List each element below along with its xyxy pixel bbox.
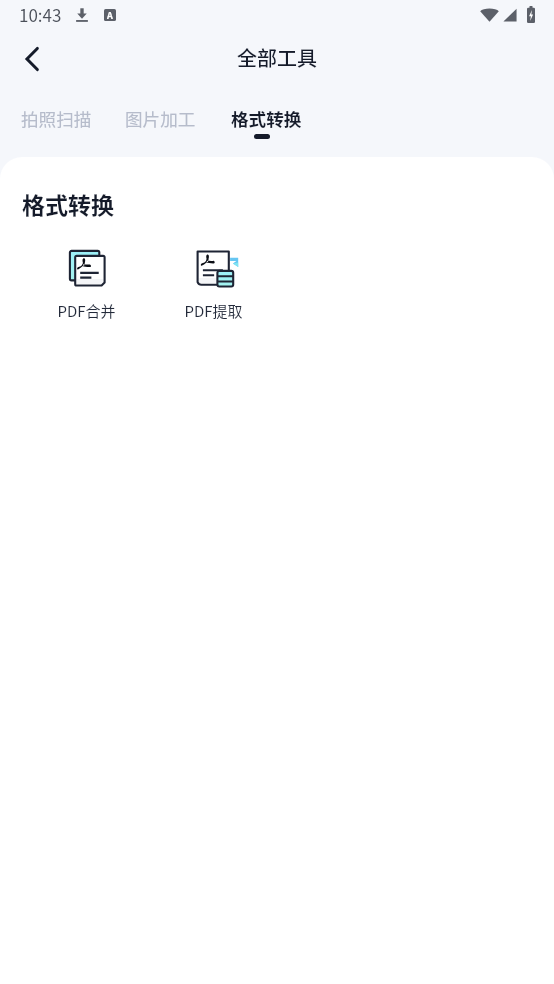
staticText: 格式转换 <box>231 106 302 131</box>
button[interactable]: PDF提取 <box>150 242 277 322</box>
button[interactable]: 格式转换 <box>231 106 302 139</box>
button[interactable]: 拍照扫描 <box>21 106 92 131</box>
staticText: 格式转换 <box>22 187 114 220</box>
staticText: PDF合并 <box>57 300 116 322</box>
staticText: 10:43 <box>19 2 62 27</box>
button[interactable]: PDF合并 <box>23 242 150 322</box>
button[interactable]: Back <box>8 35 56 83</box>
staticText: 拍照扫描 <box>21 106 92 131</box>
staticText: 全部工具 <box>237 43 317 72</box>
staticText: PDF提取 <box>184 300 243 322</box>
button[interactable]: 图片加工 <box>125 106 196 131</box>
staticText: A <box>107 9 113 21</box>
staticText: 图片加工 <box>125 106 196 131</box>
